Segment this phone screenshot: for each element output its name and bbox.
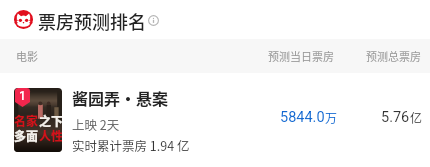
staticText: 酱园弄·悬案 <box>72 86 169 109</box>
staticText: 人性 <box>39 127 62 144</box>
staticText: 多面 <box>14 127 39 144</box>
staticText: 预测当日票房 <box>268 48 334 64</box>
staticText: 万 <box>325 109 338 126</box>
staticText: 预测总票房 <box>366 48 421 64</box>
staticText: 之下 <box>39 112 62 129</box>
staticText: 上映 2天 <box>72 115 120 133</box>
staticText: 亿 <box>410 109 423 126</box>
staticText: 5844.0 <box>280 109 325 126</box>
staticText: 5.76 <box>381 109 410 126</box>
button[interactable]: 猫眼 <box>0 0 430 39</box>
other: 猫眼 <box>14 10 33 29</box>
button[interactable]: 名家 <box>0 73 430 167</box>
staticText: 名家 <box>14 112 39 129</box>
staticText: 电影 <box>16 48 38 64</box>
staticText: 票房预测排名 <box>38 8 146 34</box>
staticText: 实时累计票房 1.94 亿 <box>72 136 190 154</box>
staticText: 1 <box>19 89 26 103</box>
other: 说明 <box>148 15 159 26</box>
